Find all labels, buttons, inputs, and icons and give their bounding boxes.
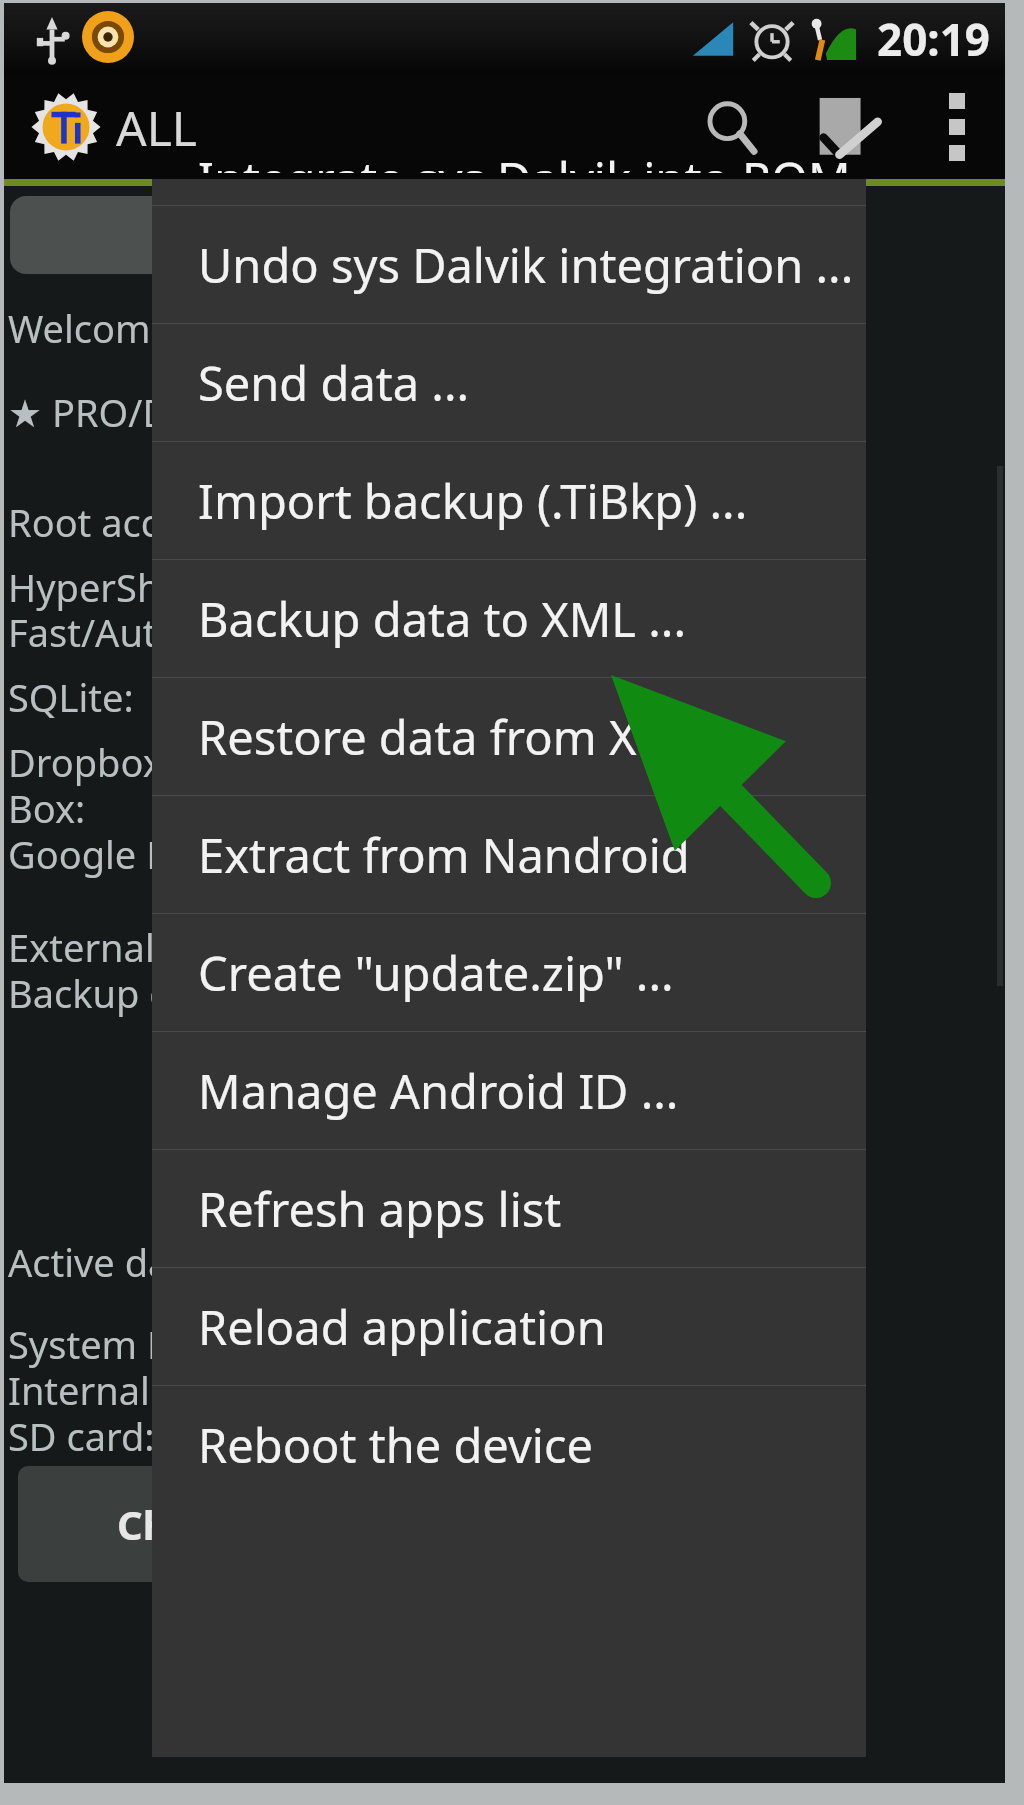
button[interactable]: Refresh apps list bbox=[152, 1150, 866, 1267]
staticText: Dropbox: bbox=[8, 736, 173, 788]
staticText: System ROM: bbox=[8, 1318, 245, 1370]
staticText: ★ PRO/DONATE version bbox=[8, 386, 434, 438]
staticText: SD card: bbox=[8, 1410, 155, 1462]
button[interactable]: Import backup (.TiBkp) ... bbox=[152, 442, 866, 559]
staticText: SQLite: bbox=[8, 671, 134, 723]
button[interactable]: Search bbox=[673, 75, 791, 179]
staticText: Google Drive: bbox=[8, 828, 251, 880]
button[interactable]: Manage Android ID ... bbox=[152, 1032, 866, 1149]
staticText: Integrate sys Dalvik into ROM ... bbox=[198, 147, 901, 173]
button[interactable]: Create "update.zip" ... bbox=[152, 914, 866, 1031]
button[interactable]: Undo sys Dalvik integration ... bbox=[152, 206, 866, 323]
button[interactable]: Overview bbox=[10, 196, 570, 274]
staticText: HyperShell: bbox=[8, 561, 212, 613]
staticText: Manage Android ID ... bbox=[198, 1059, 679, 1123]
button[interactable]: Backup data to XML ... bbox=[152, 560, 866, 677]
button[interactable]: Extract from Nandroid backup ... bbox=[152, 796, 866, 913]
staticText: Fast/Automatic mode bbox=[8, 606, 392, 658]
staticText: ALL bbox=[116, 95, 197, 160]
staticText: Send data ... bbox=[198, 351, 470, 415]
button[interactable]: Reboot the device bbox=[152, 1386, 866, 1503]
staticText: Reload application bbox=[198, 1295, 606, 1359]
staticText: Root access: bbox=[8, 496, 228, 548]
staticText: Backup data to XML ... bbox=[198, 587, 687, 651]
staticText: Overview bbox=[201, 209, 380, 261]
staticText: Create "update.zip" ... bbox=[198, 941, 674, 1005]
staticText: Restore data from XML ... bbox=[198, 705, 754, 769]
staticText: Welcome to Titanium Backup! bbox=[8, 302, 539, 354]
button[interactable]: ALL bbox=[30, 91, 197, 163]
staticText: Refresh apps list bbox=[198, 1177, 562, 1241]
button[interactable]: Restore data from XML ... bbox=[152, 678, 866, 795]
staticText: Check for updates bbox=[117, 1497, 479, 1551]
staticText: 20:19 bbox=[877, 9, 991, 69]
button[interactable]: More options bbox=[909, 75, 1005, 179]
staticText: Import backup (.TiBkp) ... bbox=[198, 469, 748, 533]
button[interactable]: Batch actions bbox=[791, 75, 909, 179]
staticText: Internal: bbox=[8, 1364, 161, 1416]
button[interactable]: Send data ... bbox=[152, 324, 866, 441]
staticText: Backup directory: bbox=[8, 967, 320, 1019]
button[interactable]: Check for updates bbox=[18, 1466, 578, 1582]
staticText: External storage: bbox=[8, 921, 311, 973]
staticText: Active dat bbox=[8, 1236, 184, 1288]
staticText: Box: bbox=[8, 782, 86, 834]
staticText: Extract from Nandroid backup ... bbox=[198, 823, 858, 887]
button[interactable]: Reload application bbox=[152, 1268, 866, 1385]
staticText: Reboot the device bbox=[198, 1413, 593, 1477]
staticText: Undo sys Dalvik integration ... bbox=[198, 233, 854, 297]
